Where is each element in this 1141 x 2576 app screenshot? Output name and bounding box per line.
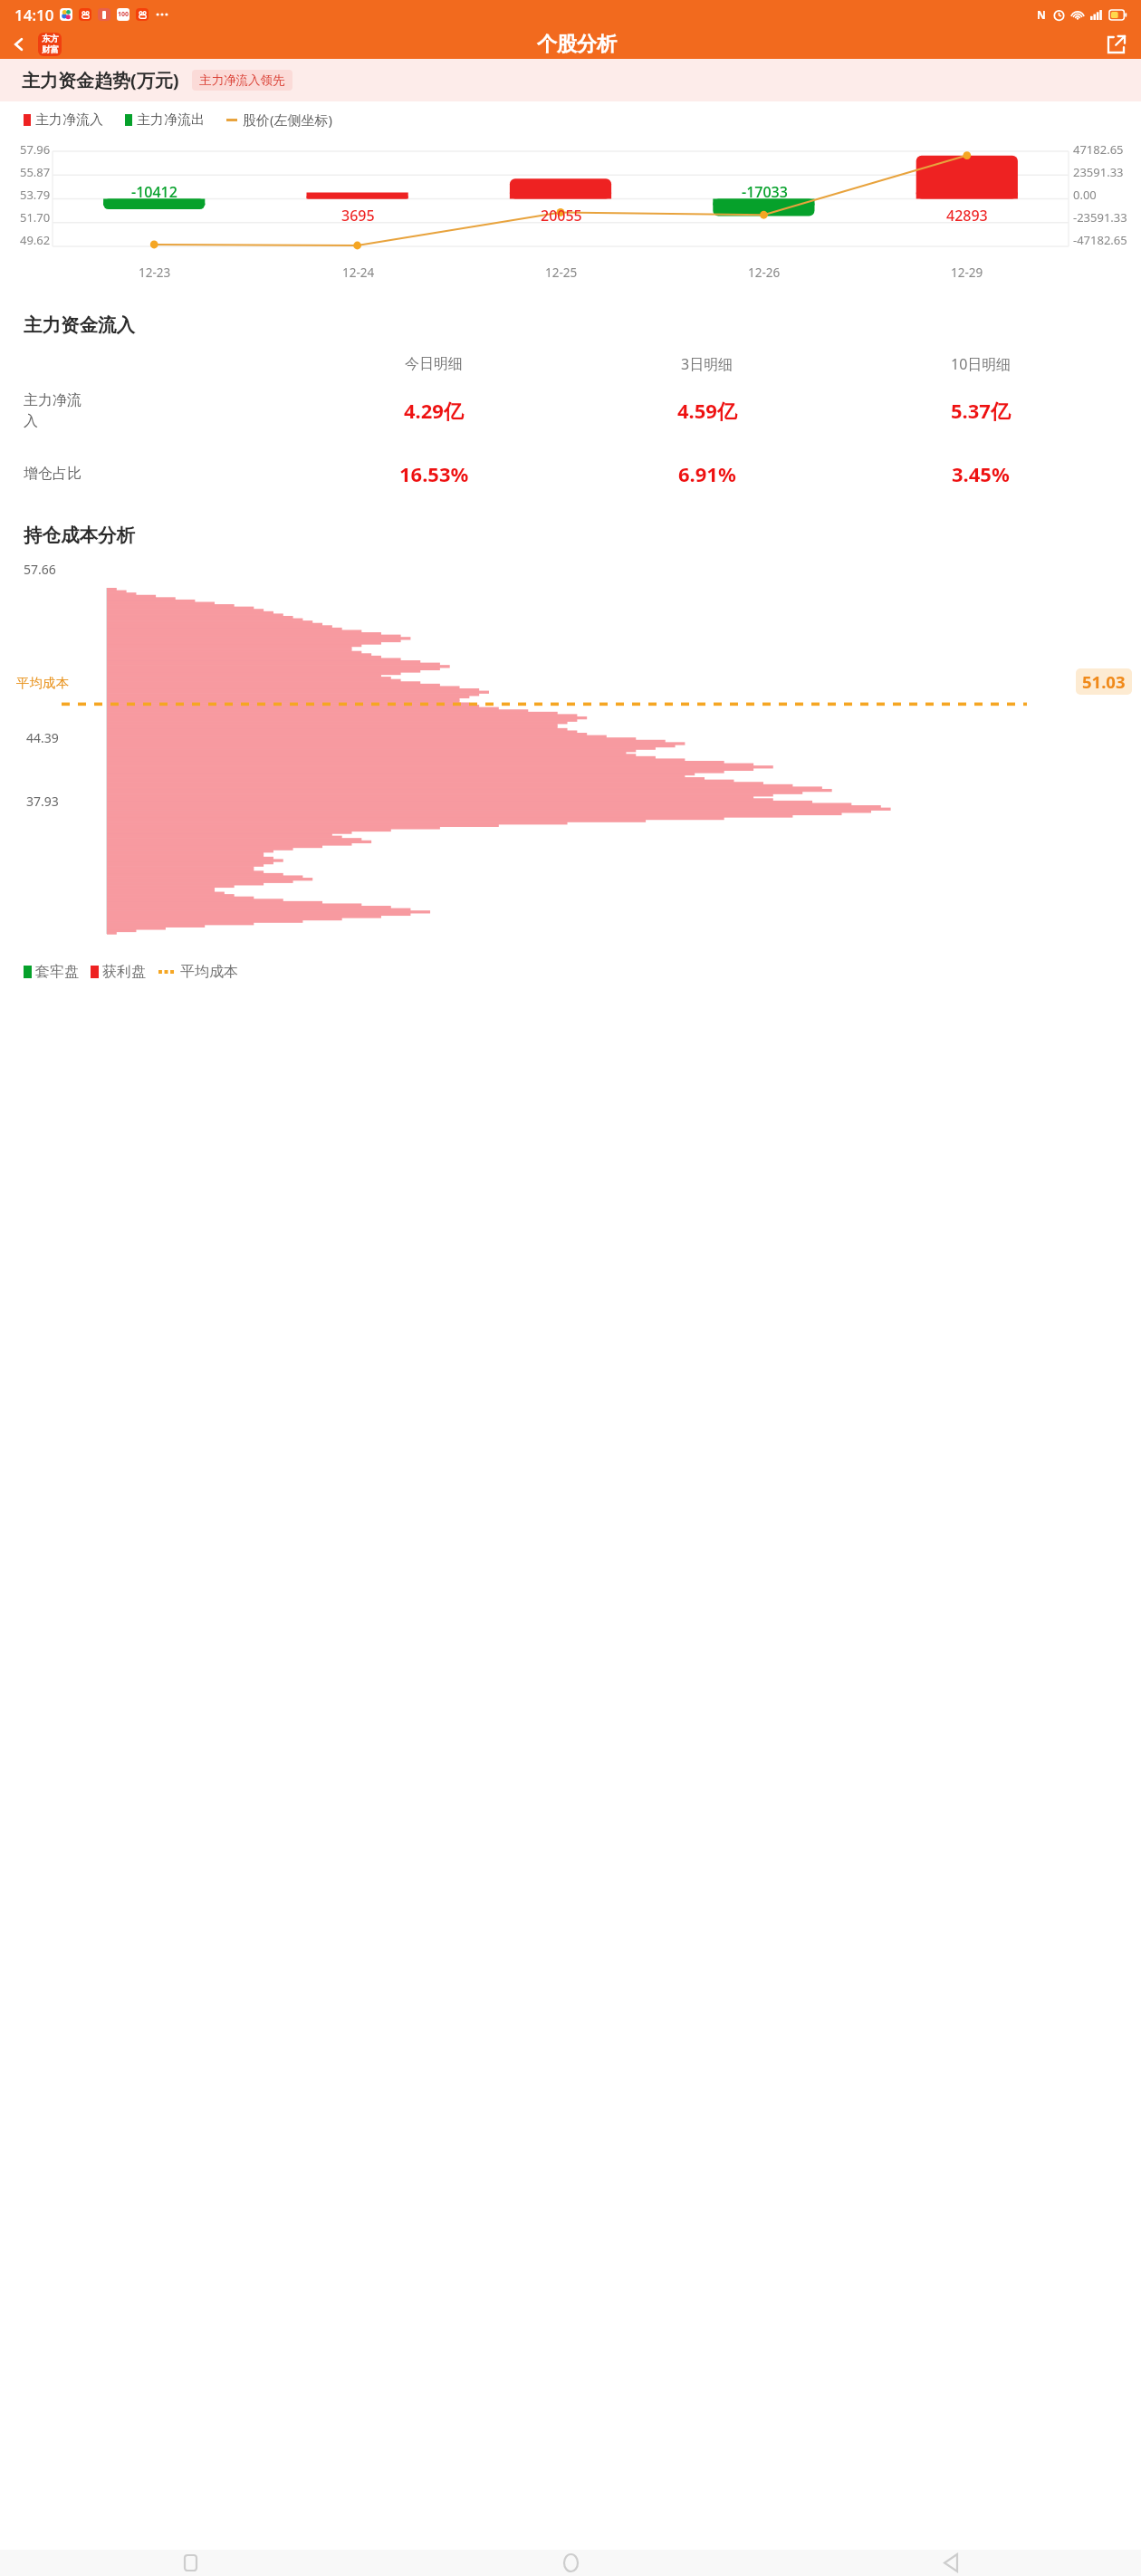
staticText: -47182.65 (1073, 232, 1127, 248)
staticText: 主力资金流入 (24, 313, 135, 337)
staticText: 主力净流出 (137, 111, 205, 129)
staticText: 57.66 (24, 561, 56, 578)
staticText: 主力资金趋势(万元) (22, 68, 179, 92)
button[interactable]: Back (0, 29, 38, 59)
staticText: 3日明细 (681, 354, 733, 374)
staticText: N (1037, 7, 1046, 22)
staticText: 12-29 (951, 264, 983, 281)
staticText: 增仓占比 (24, 465, 81, 483)
staticText: 12-25 (545, 264, 578, 281)
staticText: 主力净流 入 (24, 391, 81, 430)
staticText: 100 (118, 10, 129, 19)
staticText: 14:10 (14, 5, 54, 25)
button[interactable]: Recents (0, 2550, 380, 2576)
staticText: 37.93 (26, 793, 59, 810)
staticText: 23591.33 (1073, 164, 1124, 180)
staticText: 持仓成本分析 (24, 524, 135, 547)
staticText: 16.53% (399, 460, 469, 487)
staticText: 套牢盘 (35, 963, 79, 981)
staticText: 0.00 (1073, 187, 1097, 203)
staticText: 47182.65 (1073, 141, 1124, 158)
staticText: -17033 (742, 182, 788, 202)
button[interactable]: Share (1092, 29, 1141, 59)
staticText: 5.37亿 (951, 397, 1011, 424)
staticText: 49.62 (20, 232, 51, 248)
staticText: 平均成本 (16, 675, 69, 691)
staticText: 53.79 (20, 187, 51, 203)
button[interactable]: 主力净流入领先 (192, 70, 292, 91)
staticText: 51.70 (20, 209, 51, 226)
staticText: 10日明细 (951, 354, 1012, 374)
staticText: 20055 (541, 206, 582, 226)
staticText: 12-26 (748, 264, 781, 281)
button[interactable]: 东方财富 (38, 33, 62, 56)
button[interactable]: Back (761, 2550, 1141, 2576)
staticText: -10412 (131, 182, 177, 202)
staticText: 3695 (341, 206, 375, 226)
staticText: 51.03 (1082, 670, 1126, 693)
staticText: 获利盘 (102, 963, 146, 981)
staticText: 3.45% (952, 460, 1010, 487)
staticText: 东方 (42, 34, 59, 44)
staticText: 财富 (42, 44, 59, 55)
staticText: 主力净流入 (35, 111, 103, 129)
staticText: 12-23 (139, 264, 171, 281)
button[interactable]: Home (380, 2550, 761, 2576)
staticText: 42893 (946, 206, 988, 226)
staticText: 4.59亿 (677, 397, 737, 424)
staticText: 12-24 (342, 264, 375, 281)
staticText: 6.91% (678, 460, 736, 487)
staticText: 主力净流入领先 (199, 72, 285, 88)
staticText: 44.39 (26, 729, 59, 746)
staticText: 55.87 (20, 164, 51, 180)
staticText: 股价(左侧坐标) (243, 111, 333, 129)
staticText: 今日明细 (405, 355, 463, 373)
staticText: 4.29亿 (404, 397, 464, 424)
staticText: 个股分析 (537, 32, 617, 57)
staticText: 57.96 (20, 141, 51, 158)
staticText: 平均成本 (180, 963, 238, 981)
staticText: -23591.33 (1073, 209, 1127, 226)
